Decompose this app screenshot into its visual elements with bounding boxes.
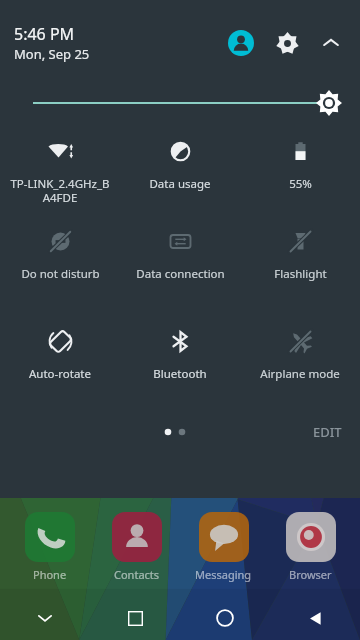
button[interactable]: EDIT <box>295 415 360 449</box>
staticText: Auto-rotate <box>29 366 91 382</box>
button[interactable]: Recent apps <box>90 596 180 640</box>
staticText: Do not disturb <box>21 266 100 282</box>
staticText: 55% <box>289 176 312 192</box>
button[interactable]: Settings <box>264 20 310 66</box>
button[interactable]: User profile <box>218 20 264 66</box>
button[interactable]: Data connection <box>120 226 240 298</box>
staticText: TP-LINK_2.4GHz_B A4FDE <box>10 176 110 205</box>
button[interactable]: Home <box>180 596 270 640</box>
button[interactable]: TP-LINK_2.4GHz_B A4FDE <box>0 136 120 208</box>
button[interactable]: Browser <box>267 512 354 582</box>
button[interactable]: Messaging <box>180 512 267 582</box>
button[interactable]: Contacts <box>93 512 180 582</box>
button[interactable]: Auto-rotate <box>0 326 120 398</box>
staticText: Mon, Sep 25 <box>14 45 90 63</box>
staticText: Bluetooth <box>153 366 207 382</box>
button[interactable]: Brightness <box>0 86 360 120</box>
button[interactable]: Flashlight <box>240 226 360 298</box>
staticText: Airplane mode <box>260 366 340 382</box>
staticText: Data usage <box>149 176 211 192</box>
button[interactable]: Back <box>270 596 360 640</box>
staticText: Contacts <box>114 567 160 582</box>
button[interactable]: Dismiss <box>0 596 90 640</box>
button[interactable]: 55% <box>240 136 360 208</box>
button[interactable]: Collapse <box>310 22 352 64</box>
button[interactable]: Bluetooth <box>120 326 240 398</box>
button[interactable]: Airplane mode <box>240 326 360 398</box>
staticText: Phone <box>33 567 67 582</box>
button[interactable]: Data usage <box>120 136 240 208</box>
staticText: Data connection <box>136 266 225 282</box>
staticText: Flashlight <box>274 266 327 282</box>
staticText: Browser <box>289 567 332 582</box>
staticText: Messaging <box>195 567 252 582</box>
button[interactable]: Phone <box>6 512 93 582</box>
button[interactable]: Do not disturb <box>0 226 120 298</box>
staticText: EDIT <box>313 423 342 441</box>
staticText: 5:46 PM <box>14 23 75 45</box>
